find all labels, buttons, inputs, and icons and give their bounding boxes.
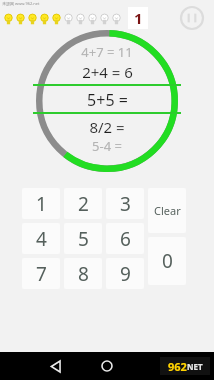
staticText: 3: [120, 191, 131, 217]
staticText: 2: [78, 191, 89, 217]
staticText: 9: [120, 261, 131, 287]
button[interactable]: Clear: [148, 188, 186, 233]
staticText: 0: [162, 248, 173, 274]
staticText: 5: [78, 226, 89, 252]
button[interactable]: 0: [148, 237, 186, 285]
staticText: 8/2 =: [89, 117, 125, 136]
staticText: 6: [120, 226, 131, 252]
staticText: 2+4 = 6: [82, 62, 133, 82]
staticText: 4+7 = 11: [81, 43, 133, 61]
staticText: 7: [36, 261, 47, 287]
button[interactable]: 2: [64, 188, 102, 219]
staticText: 962: [168, 359, 187, 374]
button[interactable]: 8: [64, 258, 102, 289]
button[interactable]: 1: [22, 188, 60, 219]
button[interactable]: 5: [64, 223, 102, 254]
staticText: 1: [36, 191, 47, 217]
button[interactable]: Pause: [180, 6, 204, 30]
button[interactable]: Home: [92, 352, 122, 380]
staticText: Clear: [154, 203, 181, 218]
staticText: 1: [134, 8, 143, 28]
staticText: 5-4 =: [92, 137, 122, 155]
button[interactable]: 6: [106, 223, 144, 254]
staticText: 5+5 =: [87, 89, 128, 109]
button[interactable]: 4: [22, 223, 60, 254]
button[interactable]: 7: [22, 258, 60, 289]
staticText: 来源网 www.962.net: [2, 1, 40, 6]
button[interactable]: Back: [40, 352, 70, 380]
button[interactable]: 1: [128, 7, 148, 29]
button[interactable]: 9: [106, 258, 144, 289]
staticText: 8: [78, 261, 89, 287]
staticText: NET: [187, 361, 203, 372]
button[interactable]: 3: [106, 188, 144, 219]
staticText: 4: [36, 226, 47, 252]
